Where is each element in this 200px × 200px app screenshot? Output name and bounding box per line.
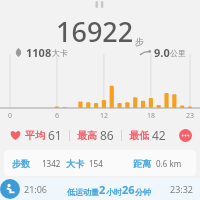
staticText: 0.6 km: [156, 158, 182, 169]
staticText: 2: [99, 182, 106, 197]
staticText: 12: [98, 111, 110, 121]
staticText: 42: [152, 127, 166, 143]
staticText: 1342: [42, 158, 61, 169]
staticText: 18: [145, 111, 157, 121]
staticText: 6: [51, 111, 63, 121]
staticText: 21:06: [24, 183, 48, 195]
staticText: 23:32: [170, 183, 194, 195]
button[interactable]: 1108: [14, 45, 68, 60]
staticText: 9.0: [154, 45, 170, 60]
button[interactable]: 平均: [0, 124, 200, 146]
staticText: 61: [48, 127, 62, 143]
staticText: 26: [122, 182, 135, 197]
staticText: 23: [184, 111, 196, 121]
staticText: 最高: [77, 129, 97, 142]
staticText: 16922: [56, 13, 134, 50]
staticText: 步数: [12, 158, 30, 169]
staticText: 大卡: [52, 48, 68, 58]
staticText: 小时: [106, 187, 122, 197]
staticText: 分钟: [135, 187, 151, 197]
staticText: 公里: [170, 48, 186, 58]
staticText: 1108: [26, 45, 52, 60]
staticText: 平均: [25, 129, 45, 142]
staticText: 低运动量: [67, 187, 99, 197]
staticText: 距离: [133, 158, 151, 169]
button[interactable]: 9.0: [140, 45, 186, 60]
button[interactable]: 步数: [4, 150, 196, 176]
staticText: 步: [135, 36, 144, 47]
button[interactable]: More heart rate details: [179, 129, 192, 142]
button[interactable]: Low activity: [0, 178, 200, 200]
staticText: 154: [89, 158, 103, 169]
other: Low activity: [0, 179, 20, 199]
staticText: 大卡: [66, 158, 84, 169]
staticText: 0: [4, 111, 16, 121]
staticText: 86: [100, 127, 114, 143]
staticText: 最低: [129, 129, 149, 142]
